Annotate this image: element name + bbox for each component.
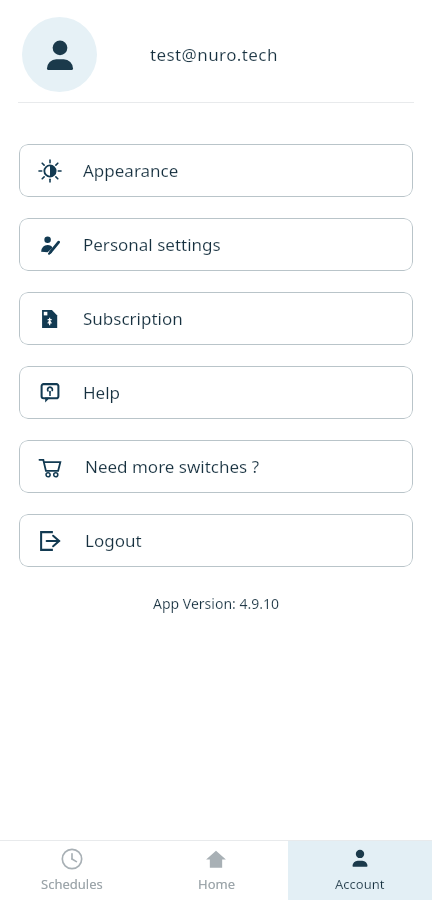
staticText: Personal settings — [83, 233, 221, 256]
button[interactable]: Need more switches ? — [19, 440, 413, 493]
staticText: Account — [335, 875, 385, 893]
staticText: App Version: 4.9.10 — [0, 594, 432, 613]
staticText: Schedules — [41, 875, 103, 893]
button[interactable]: Profile avatar — [22, 17, 97, 92]
staticText: Appearance — [83, 159, 179, 182]
staticText: test@nuro.tech — [150, 43, 278, 66]
staticText: Subscription — [83, 307, 183, 330]
button[interactable]: Help — [19, 366, 413, 419]
button[interactable]: Home — [144, 841, 288, 900]
button[interactable]: Appearance — [19, 144, 413, 197]
staticText: Home — [198, 875, 235, 893]
button[interactable]: Schedules — [0, 841, 144, 900]
button[interactable]: Logout — [19, 514, 413, 567]
staticText: Need more switches ? — [85, 455, 260, 478]
button[interactable]: Account — [288, 841, 432, 900]
staticText: Logout — [85, 529, 142, 552]
staticText: Help — [83, 381, 121, 404]
button[interactable]: Personal settings — [19, 218, 413, 271]
button[interactable]: Subscription — [19, 292, 413, 345]
